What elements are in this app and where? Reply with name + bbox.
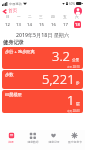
staticText: 四 <box>51 15 55 20</box>
staticText: 日 <box>6 15 10 20</box>
staticText: 14 <box>27 22 32 28</box>
button[interactable]: 16 <box>50 21 57 28</box>
staticText: 层 <box>76 102 80 107</box>
staticText: 健康数据 <box>27 140 39 144</box>
button[interactable]: 医疗急救卡 <box>64 132 85 150</box>
staticText: 今天 20:33 <box>67 109 80 113</box>
staticText: 15 <box>39 22 44 28</box>
staticText: 1 <box>67 91 75 109</box>
staticText: 17 <box>63 22 68 28</box>
button[interactable]: 18 <box>74 21 81 28</box>
staticText: 三 <box>39 15 43 20</box>
staticText: 健康记录 <box>48 140 60 144</box>
button[interactable]: 12 <box>4 21 11 28</box>
staticText: 已爬楼层 <box>5 92 22 97</box>
button[interactable]: 已爬楼层 <box>2 90 83 113</box>
button[interactable]: 健康记录 <box>43 132 64 150</box>
button[interactable]: 17 <box>62 21 69 28</box>
staticText: 步数 <box>5 72 14 77</box>
staticText: 3.2 <box>52 47 71 65</box>
staticText: 公里 <box>72 58 80 63</box>
button[interactable]: 14 <box>26 21 33 28</box>
button[interactable]: 摘要 <box>0 132 22 150</box>
staticText: 五 <box>63 15 67 20</box>
staticText: 中国移动 <box>9 2 22 6</box>
staticText: 六 <box>75 15 79 20</box>
button[interactable]: 首页 <box>1 7 20 15</box>
staticText: 2019年5月18日 星期六 <box>16 31 70 38</box>
staticText: 医疗急救卡 <box>68 140 82 144</box>
staticText: 12 <box>5 22 10 28</box>
button[interactable]: 健康数据 <box>22 132 43 150</box>
staticText: 60% <box>69 2 75 6</box>
staticText: 18 <box>75 22 80 28</box>
staticText: 一 <box>17 15 21 20</box>
staticText: 摘要 <box>8 140 14 144</box>
staticText: 5,221 <box>42 70 75 88</box>
staticText: 步 <box>76 81 80 86</box>
staticText: 步行 + 跑步距离 <box>5 49 35 55</box>
staticText: 13 <box>16 22 21 28</box>
staticText: 首页 <box>8 8 18 14</box>
staticText: 16 <box>51 22 56 28</box>
button[interactable]: Profile <box>74 7 82 15</box>
button[interactable]: 步数 <box>2 70 83 89</box>
button[interactable]: 13 <box>15 21 22 28</box>
staticText: 二 <box>28 15 32 20</box>
staticText: 健身记录 <box>3 39 24 46</box>
staticText: 今天 20:13 <box>67 65 80 68</box>
button[interactable]: 步行 + 跑步距离 <box>2 47 83 69</box>
button[interactable]: 15 <box>38 21 45 28</box>
